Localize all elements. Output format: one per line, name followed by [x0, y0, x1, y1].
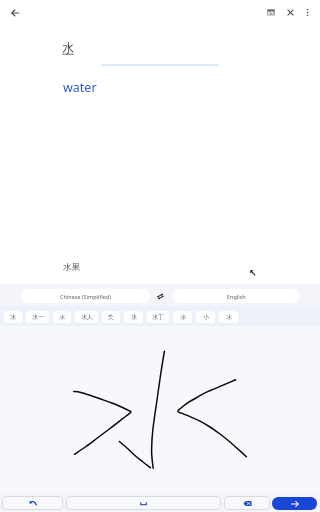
button[interactable]: Close [280, 2, 301, 23]
button[interactable]: Enter [272, 497, 317, 510]
staticText: 氺 [59, 313, 65, 321]
button[interactable]: 水丁 [147, 311, 169, 323]
staticText: 水丁 [152, 313, 164, 321]
button[interactable]: English [172, 289, 300, 303]
button[interactable]: 氺 [219, 311, 238, 323]
button[interactable]: Back [4, 2, 25, 23]
button[interactable]: Expand [246, 266, 259, 279]
staticText: 水人 [81, 313, 93, 321]
button[interactable]: Swap languages [152, 288, 168, 304]
button[interactable]: 氼 [102, 311, 120, 323]
button[interactable]: 水人 [75, 311, 98, 323]
button[interactable]: 水果 [63, 262, 80, 273]
button[interactable]: More options [297, 2, 318, 23]
staticText: Chinese (Simplified) [60, 293, 111, 300]
staticText: 氺 [226, 313, 232, 321]
button[interactable]: 氺 [173, 311, 192, 323]
staticText: water [63, 79, 97, 96]
button[interactable]: Show keyboard [260, 2, 281, 23]
staticText: 水一 [32, 313, 44, 321]
staticText: 水 [10, 313, 16, 321]
staticText: 氼 [108, 313, 114, 321]
button[interactable]: Space [66, 496, 221, 510]
button[interactable]: 水一 [26, 311, 49, 323]
button[interactable]: 水 [4, 311, 22, 323]
button[interactable]: Chinese (Simplified) [21, 289, 150, 303]
staticText: 水 [62, 40, 74, 55]
staticText: 氺 [180, 313, 186, 321]
staticText: 小 [203, 313, 209, 321]
staticText: 氷 [131, 313, 137, 321]
staticText: English [227, 293, 246, 300]
button[interactable]: Backspace [224, 496, 270, 510]
button[interactable]: 氺 [53, 311, 71, 323]
button[interactable]: 小 [196, 311, 215, 323]
button[interactable]: Undo [2, 496, 63, 510]
button[interactable]: 氷 [124, 311, 143, 323]
